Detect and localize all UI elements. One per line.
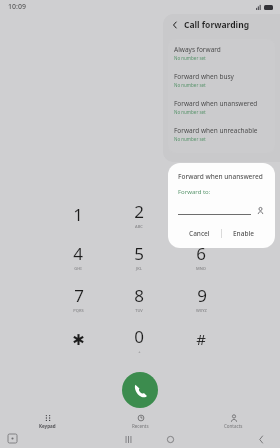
staticText: Recents bbox=[132, 423, 149, 429]
staticText: Call forwarding bbox=[184, 19, 250, 31]
staticText: Keypad bbox=[39, 423, 56, 429]
button[interactable]: 8 bbox=[113, 279, 165, 317]
button[interactable]: 0 bbox=[113, 320, 165, 358]
staticText: ✱ bbox=[72, 331, 85, 348]
staticText: No number set bbox=[174, 109, 206, 115]
button[interactable]: Forward when unanswered bbox=[168, 96, 275, 118]
staticText: Always forward bbox=[174, 45, 221, 54]
button[interactable]: 9 bbox=[175, 279, 227, 317]
staticText: 3 bbox=[196, 200, 206, 223]
staticText: JKL bbox=[136, 266, 142, 271]
button[interactable]: Enable bbox=[222, 224, 265, 242]
staticText: No number set bbox=[174, 136, 206, 142]
button[interactable]: Keyboard bbox=[8, 434, 17, 443]
button[interactable]: Recent apps bbox=[121, 432, 135, 446]
staticText: 10:09 bbox=[8, 2, 26, 12]
staticText: PQRS bbox=[73, 308, 84, 313]
button[interactable] bbox=[178, 205, 251, 215]
button[interactable]: Keypad bbox=[0, 411, 94, 431]
staticText: Contacts bbox=[224, 423, 243, 429]
staticText: MNO bbox=[196, 266, 206, 271]
staticText: Forward when unanswered bbox=[174, 99, 258, 108]
button[interactable]: ✱ bbox=[52, 320, 104, 358]
staticText: 2 bbox=[134, 200, 144, 223]
staticText: Forward to: bbox=[178, 188, 211, 196]
button[interactable]: Always forward bbox=[168, 42, 275, 64]
staticText: Enable bbox=[233, 229, 254, 238]
button[interactable]: Choose contact bbox=[256, 206, 265, 215]
button[interactable]: 3 bbox=[175, 195, 227, 233]
staticText: No number set bbox=[174, 82, 206, 88]
button[interactable]: Forward when busy bbox=[168, 69, 275, 91]
staticText: 1 bbox=[73, 203, 83, 226]
staticText: No number set bbox=[174, 55, 206, 61]
button[interactable]: Contacts bbox=[187, 411, 280, 431]
button[interactable]: 1 bbox=[52, 195, 104, 233]
button[interactable]: Call bbox=[122, 372, 158, 408]
staticText: Forward when unanswered bbox=[178, 172, 263, 181]
staticText: 0 bbox=[134, 325, 144, 348]
button[interactable]: Back bbox=[254, 432, 268, 446]
staticText: 7 bbox=[74, 284, 84, 307]
button[interactable]: Back bbox=[169, 19, 181, 31]
button[interactable]: Forward when unreachable bbox=[168, 123, 275, 145]
button[interactable]: 7 bbox=[52, 279, 104, 317]
staticText: Forward when unreachable bbox=[174, 126, 258, 135]
staticText: 6 bbox=[196, 242, 206, 265]
staticText: 5 bbox=[134, 242, 144, 265]
button[interactable]: Home bbox=[163, 432, 177, 446]
button[interactable]: 6 bbox=[175, 237, 227, 275]
staticText: GHI bbox=[74, 266, 82, 271]
staticText: Forward when busy bbox=[174, 72, 234, 81]
button[interactable]: # bbox=[175, 320, 227, 358]
button[interactable]: Cancel bbox=[178, 224, 221, 242]
button[interactable]: Recents bbox=[94, 411, 187, 431]
staticText: 4 bbox=[73, 242, 83, 265]
staticText: 8 bbox=[134, 284, 144, 307]
staticText: ABC bbox=[135, 224, 143, 229]
staticText: + bbox=[138, 349, 141, 354]
staticText: # bbox=[196, 329, 206, 349]
staticText: TUV bbox=[135, 308, 143, 313]
button[interactable]: 4 bbox=[52, 237, 104, 275]
button[interactable]: 2 bbox=[113, 195, 165, 233]
button[interactable]: 5 bbox=[113, 237, 165, 275]
staticText: WXYZ bbox=[196, 308, 207, 313]
staticText: Cancel bbox=[189, 229, 210, 238]
staticText: 9 bbox=[197, 284, 207, 307]
